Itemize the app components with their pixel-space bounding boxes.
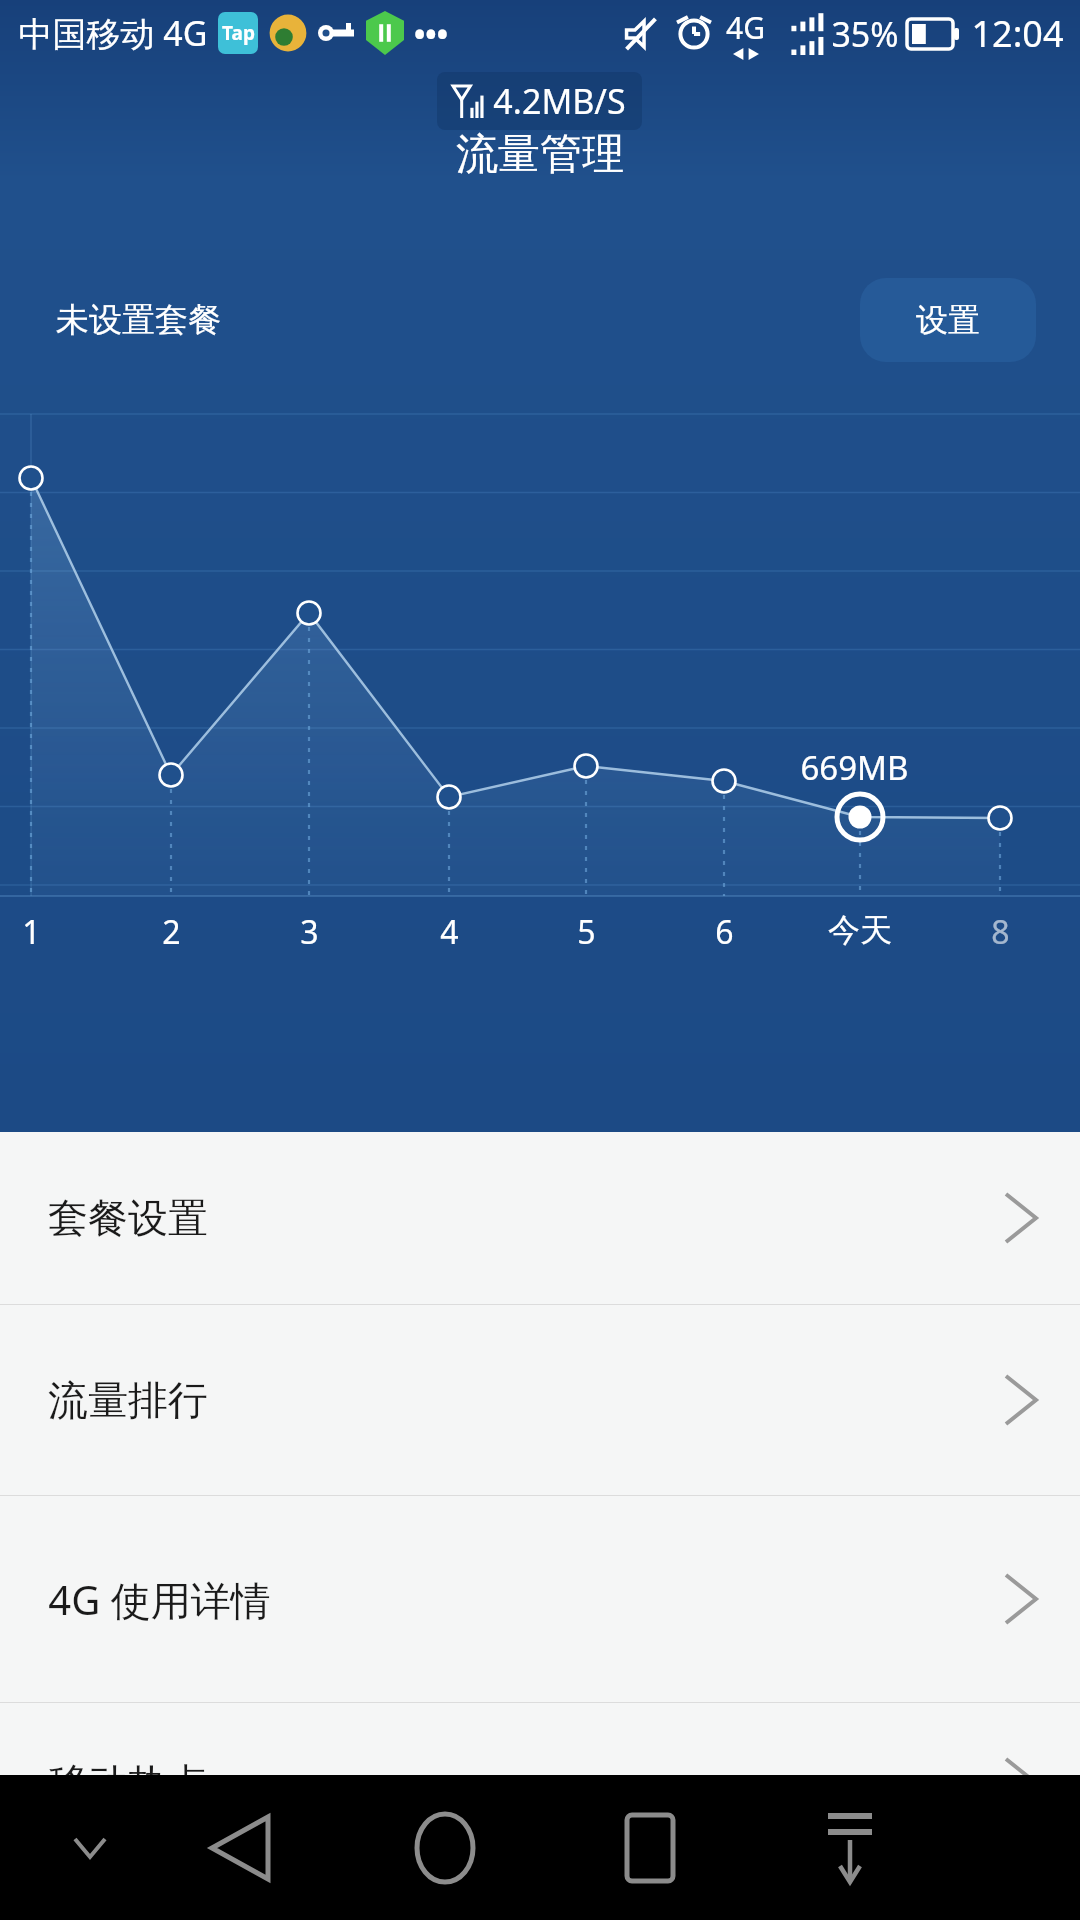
staticText: 中国移动 4G: [18, 10, 208, 56]
staticText: 4G: [726, 7, 765, 48]
staticText: 3: [300, 910, 319, 954]
button[interactable]: Recent apps: [590, 1775, 710, 1920]
staticText: 今天: [828, 910, 892, 950]
staticText: 流量排行: [48, 1375, 208, 1425]
button[interactable]: Hide navigation bar: [50, 1775, 130, 1920]
staticText: 6: [715, 910, 734, 954]
staticText: 669MB: [800, 745, 909, 790]
button[interactable]: 设置: [860, 278, 1036, 362]
staticText: 35%: [831, 11, 899, 57]
staticText: 5: [577, 910, 596, 954]
button[interactable]: 套餐设置: [0, 1132, 1080, 1304]
button[interactable]: Pull down notifications: [790, 1775, 910, 1920]
button[interactable]: 流量排行: [0, 1305, 1080, 1495]
staticText: 未设置套餐: [56, 299, 221, 341]
staticText: 套餐设置: [48, 1193, 208, 1243]
staticText: Tap: [222, 20, 255, 46]
button[interactable]: 移动热点: [0, 1703, 1080, 1863]
staticText: 移动热点: [48, 1758, 208, 1808]
staticText: 1: [22, 910, 41, 954]
staticText: 2: [162, 910, 181, 954]
staticText: 12:04: [971, 9, 1064, 58]
staticText: •••: [414, 13, 448, 54]
staticText: 8: [991, 910, 1010, 954]
staticText: 4: [440, 910, 459, 954]
staticText: 流量管理: [456, 128, 624, 181]
staticText: 4G 使用详情: [48, 1572, 271, 1627]
staticText: 设置: [916, 300, 980, 340]
button[interactable]: 4G 使用详情: [0, 1496, 1080, 1702]
button[interactable]: Back: [180, 1775, 300, 1920]
staticText: 4.2MB/S: [493, 78, 626, 124]
button[interactable]: Home: [385, 1775, 505, 1920]
